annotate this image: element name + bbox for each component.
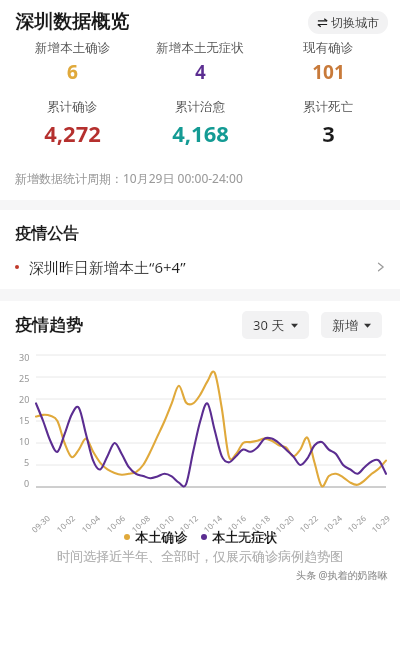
- staticText: 10-26: [345, 512, 368, 535]
- staticText: 09-30: [29, 512, 52, 535]
- staticText: 10-24: [321, 512, 344, 535]
- staticText: 10-20: [273, 512, 296, 535]
- staticText: 20: [19, 393, 30, 405]
- staticText: 现有确诊: [303, 40, 353, 56]
- staticText: 5: [24, 456, 30, 468]
- staticText: 10-04: [79, 512, 102, 535]
- staticText: 4,168: [172, 118, 229, 148]
- staticText: 新增: [332, 317, 358, 333]
- staticText: 头条 @执着的奶路咻: [296, 568, 388, 582]
- staticText: 25: [19, 372, 30, 384]
- staticText: 101: [312, 59, 345, 85]
- staticText: 4: [195, 59, 206, 85]
- staticText: 疫情趋势: [15, 315, 83, 336]
- staticText: 0: [24, 477, 30, 489]
- staticText: 6: [67, 59, 78, 85]
- staticText: 10-06: [104, 512, 127, 535]
- staticText: 10-08: [129, 512, 152, 535]
- button[interactable]: 30 天: [242, 311, 309, 339]
- staticText: 切换城市: [331, 15, 379, 30]
- staticText: 15: [19, 414, 30, 426]
- staticText: 10-22: [297, 512, 320, 535]
- staticText: 深圳昨日新增本土“6+4”: [29, 257, 186, 277]
- staticText: 时间选择近半年、全部时，仅展示确诊病例趋势图: [14, 548, 386, 564]
- staticText: 深圳数据概览: [15, 10, 129, 34]
- staticText: 本土无症状: [212, 529, 277, 545]
- staticText: 30 天: [253, 316, 285, 334]
- staticText: 10-12: [177, 512, 200, 535]
- button[interactable]: 切换城市: [308, 11, 388, 34]
- staticText: 10-10: [153, 512, 176, 535]
- staticText: 10: [19, 435, 30, 447]
- staticText: 10-02: [54, 512, 77, 535]
- staticText: 累计死亡: [303, 99, 353, 115]
- staticText: 新增本土确诊: [35, 40, 110, 56]
- button[interactable]: 深圳昨日新增本土“6+4”: [0, 254, 400, 283]
- staticText: 新增本土无症状: [156, 40, 244, 56]
- staticText: 10-29: [369, 512, 392, 535]
- staticText: 4,272: [44, 118, 101, 148]
- staticText: 累计确诊: [47, 99, 97, 115]
- staticText: 3: [322, 118, 335, 148]
- staticText: 疫情公告: [15, 224, 79, 244]
- staticText: 10-14: [201, 512, 224, 535]
- staticText: 新增数据统计周期：10月29日 00:00-24:00: [15, 170, 243, 186]
- staticText: 10-18: [249, 512, 272, 535]
- staticText: 累计治愈: [175, 99, 225, 115]
- staticText: 30: [19, 351, 30, 363]
- button[interactable]: 新增: [321, 312, 382, 338]
- staticText: 10-16: [225, 512, 248, 535]
- staticText: 本土确诊: [135, 529, 187, 545]
